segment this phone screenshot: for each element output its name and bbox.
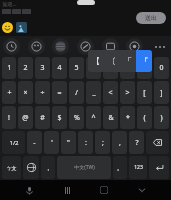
staticText: / (75, 88, 78, 98)
button[interactable]: Image (16, 22, 27, 33)
button[interactable]: Emoji (2, 22, 13, 33)
button[interactable]: ] (154, 81, 169, 104)
button[interactable]: ㄅ文 (2, 156, 21, 179)
button[interactable]: Voice (21, 182, 37, 198)
button[interactable]: 3 (35, 57, 50, 79)
staticText: # (40, 113, 45, 123)
button[interactable]: [ (137, 81, 152, 104)
staticText: ? (135, 138, 139, 148)
staticText: × (23, 88, 28, 98)
button[interactable]: % (69, 106, 84, 129)
button[interactable]: Recents (59, 182, 75, 198)
staticText: 8 (125, 63, 130, 73)
button[interactable]: 『 (136, 50, 152, 72)
button[interactable]: & (103, 106, 118, 129)
staticText: 中文(TW) (74, 164, 95, 171)
button[interactable]: 1 (2, 57, 16, 79)
button[interactable]: 1/2 (2, 131, 25, 154)
button[interactable]: More (151, 38, 168, 55)
button[interactable]: ^ (86, 106, 101, 129)
button[interactable]: / (69, 81, 84, 104)
button[interactable]: Back (134, 182, 150, 198)
staticText: ' (51, 138, 53, 148)
button[interactable]: ) (154, 106, 169, 129)
staticText: 4 (57, 63, 62, 73)
button[interactable]: - (27, 131, 42, 154)
staticText: 7 (108, 63, 113, 73)
button[interactable]: 。 (113, 156, 127, 179)
staticText: " (67, 138, 70, 148)
staticText: 0 (159, 63, 164, 73)
button[interactable]: , (112, 131, 127, 154)
staticText: 9 (142, 63, 147, 73)
button[interactable]: 8 (120, 57, 135, 79)
staticText: 送出 (145, 14, 157, 22)
staticText: , (119, 138, 121, 148)
button[interactable]: 6 (86, 57, 101, 79)
button[interactable]: " (61, 131, 76, 154)
button[interactable]: 2 (18, 57, 33, 79)
button[interactable]: _ (86, 81, 101, 104)
button[interactable]: 中文(TW) (57, 156, 111, 179)
button[interactable]: Home (96, 182, 112, 198)
staticText: ^ (91, 113, 96, 123)
staticText: ! (8, 113, 10, 123)
staticText: 【 (92, 56, 100, 66)
staticText: < (108, 88, 113, 98)
button[interactable]: 0 (154, 57, 169, 79)
staticText: 。 (117, 164, 123, 172)
button[interactable]: ， (41, 156, 55, 179)
staticText: 6 (91, 63, 96, 73)
button[interactable]: 7 (103, 57, 118, 79)
staticText: ÷ (40, 88, 45, 98)
staticText: 2 (23, 63, 28, 73)
button[interactable]: 5 (69, 57, 84, 79)
staticText: [ (143, 88, 146, 98)
staticText: @ (22, 113, 29, 123)
button[interactable]: Change language (23, 156, 39, 179)
button[interactable]: : (78, 131, 93, 154)
button[interactable]: × (18, 81, 33, 104)
button[interactable]: @ (18, 106, 33, 129)
button[interactable]: ' (44, 131, 59, 154)
staticText: $ (57, 113, 62, 123)
button[interactable]: * (120, 106, 135, 129)
button[interactable]: 「 (120, 50, 136, 72)
button[interactable]: = (52, 81, 67, 104)
button[interactable]: > (120, 81, 135, 104)
button[interactable]: + (2, 81, 16, 104)
button[interactable]: GIF (102, 38, 119, 55)
button[interactable]: Backspace (146, 131, 169, 154)
button[interactable]: 123 (129, 156, 147, 179)
button[interactable]: Camera (126, 38, 143, 55)
button[interactable]: ! (2, 106, 16, 129)
button[interactable]: ; (95, 131, 110, 154)
button[interactable]: 【 (88, 50, 104, 72)
button[interactable]: $ (52, 106, 67, 129)
staticText: - (33, 138, 36, 148)
staticText: 1 (7, 63, 12, 73)
button[interactable]: Voice input (52, 38, 69, 55)
staticText: ㄅ文 (6, 165, 17, 171)
button[interactable]: # (35, 106, 50, 129)
staticText: 「 (124, 56, 132, 66)
staticText: ( (143, 113, 146, 123)
button[interactable]: ( (137, 106, 152, 129)
button[interactable]: Sticker (28, 38, 45, 55)
staticText: % (74, 113, 80, 123)
staticText: ) (160, 113, 163, 123)
button[interactable]: 〔 (104, 50, 120, 72)
staticText: + (7, 88, 12, 98)
staticText: _ (92, 88, 96, 98)
button[interactable]: ÷ (35, 81, 50, 104)
button[interactable]: 4 (52, 57, 67, 79)
staticText: ， (45, 164, 51, 172)
button[interactable]: < (103, 81, 118, 104)
button[interactable]: 9 (137, 57, 152, 79)
button[interactable]: 送出 (136, 12, 166, 24)
staticText: 1/2 (9, 139, 19, 147)
button[interactable]: Clipboard (3, 38, 20, 55)
button[interactable]: Enter (149, 156, 169, 179)
button[interactable]: ? (129, 131, 144, 154)
button[interactable]: Translate (77, 38, 94, 55)
